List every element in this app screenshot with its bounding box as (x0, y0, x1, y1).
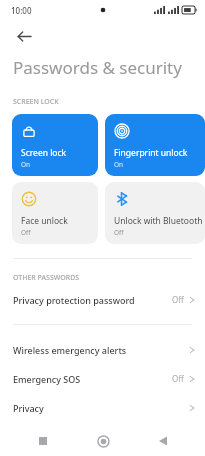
button[interactable]: Fingerprint unlock (105, 114, 205, 176)
staticText: 10:00 (11, 5, 32, 16)
staticText: Off (172, 294, 184, 305)
button[interactable]: Home (86, 426, 120, 456)
staticText: Face unlock (21, 215, 68, 227)
staticText: Emergency SOS (13, 373, 81, 385)
staticText: Passwords & security (13, 56, 182, 79)
button[interactable]: Back (8, 20, 40, 52)
staticText: Privacy (13, 402, 44, 414)
staticText: Off (21, 228, 31, 237)
button[interactable]: Unlock with Bluetooth (105, 182, 205, 244)
button[interactable]: Back (146, 426, 180, 456)
staticText: On (21, 160, 31, 169)
staticText: Off (172, 373, 184, 384)
button[interactable]: Recents (26, 426, 60, 456)
staticText: On (114, 160, 124, 169)
staticText: Unlock with Bluetooth (114, 215, 203, 227)
button[interactable]: Wireless emergency alerts (0, 335, 205, 364)
staticText: Screen lock (21, 147, 67, 159)
staticText: Privacy protection password (13, 294, 135, 306)
staticText: Wireless emergency alerts (13, 344, 127, 356)
button[interactable]: Face unlock (12, 182, 98, 244)
staticText: Fingerprint unlock (114, 147, 188, 159)
staticText: OTHER PASSWORDS (13, 273, 80, 283)
button[interactable]: Privacy protection password (0, 285, 205, 314)
button[interactable]: Screen lock (12, 114, 98, 176)
button[interactable]: Privacy (0, 393, 205, 422)
staticText: SCREEN LOCK (13, 97, 59, 107)
button[interactable]: Emergency SOS (0, 364, 205, 393)
staticText: Off (114, 228, 124, 237)
